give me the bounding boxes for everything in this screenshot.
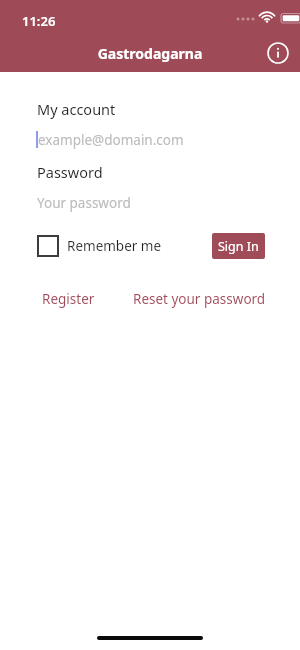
staticText: Remember me	[67, 237, 162, 255]
staticText: My account	[37, 99, 116, 119]
staticText: Reset your password	[133, 290, 266, 308]
button[interactable]: Register	[42, 290, 95, 308]
button[interactable]: Remember me	[37, 235, 162, 257]
button[interactable]: Information	[266, 41, 290, 65]
staticText: Register	[42, 290, 95, 308]
button[interactable]: Your password	[0, 193, 300, 213]
button[interactable]: Sign In	[212, 233, 265, 259]
staticText: 11:26	[22, 12, 56, 30]
button[interactable]: example@domain.com	[0, 130, 300, 150]
staticText: Gastrodagarna	[0, 44, 300, 63]
button[interactable]: Reset your password	[133, 290, 266, 308]
staticText: example@domain.com	[38, 131, 184, 149]
staticText: Password	[37, 162, 103, 182]
staticText: Your password	[37, 194, 131, 212]
staticText: Sign In	[218, 238, 259, 255]
